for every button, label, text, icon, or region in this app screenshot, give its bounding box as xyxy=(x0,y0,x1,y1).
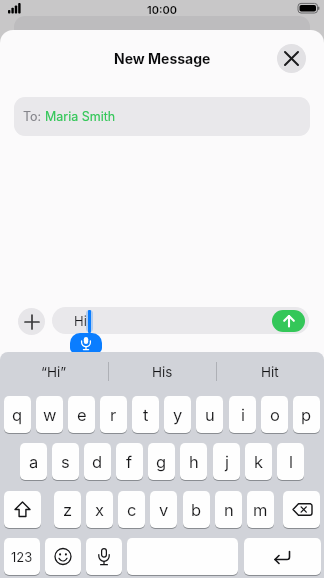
staticText: v xyxy=(159,500,169,520)
staticText: 10:00 xyxy=(147,3,177,16)
staticText: New Message xyxy=(114,50,211,67)
button[interactable]: t xyxy=(132,396,159,434)
staticText: i xyxy=(241,405,245,425)
staticText: u xyxy=(205,405,215,425)
staticText: Hit xyxy=(261,364,279,380)
button[interactable]: e xyxy=(68,396,95,434)
button[interactable]: 123 xyxy=(4,538,40,576)
staticText: h xyxy=(189,452,199,472)
button[interactable]: f xyxy=(116,443,143,481)
staticText: j xyxy=(225,452,229,472)
button[interactable]: k xyxy=(245,443,272,481)
button[interactable]: s xyxy=(52,443,79,481)
staticText: 123 xyxy=(11,549,33,565)
button[interactable]: a xyxy=(20,443,47,481)
staticText: c xyxy=(127,500,137,520)
button[interactable] xyxy=(283,491,320,529)
staticText: Maria Smith xyxy=(45,109,116,124)
button[interactable]: u xyxy=(196,396,223,434)
staticText: z xyxy=(63,500,73,520)
staticText: l xyxy=(289,452,293,472)
button[interactable]: j xyxy=(213,443,240,481)
staticText: p xyxy=(301,405,312,425)
staticText: f xyxy=(126,452,133,472)
staticText: n xyxy=(224,500,234,520)
button[interactable]: y xyxy=(164,396,191,434)
button[interactable]: q xyxy=(4,396,31,434)
button[interactable]: “Hi” xyxy=(0,352,108,391)
button[interactable]: x xyxy=(86,491,113,529)
button[interactable]: To: xyxy=(14,97,310,136)
staticText: m xyxy=(253,500,268,520)
staticText: s xyxy=(61,452,70,472)
button[interactable] xyxy=(18,308,45,335)
staticText: Hi xyxy=(74,313,87,329)
button[interactable] xyxy=(277,44,306,73)
staticText: b xyxy=(191,500,202,520)
button[interactable]: Hit xyxy=(216,352,324,391)
staticText: x xyxy=(95,500,105,520)
staticText: t xyxy=(143,405,149,425)
button[interactable]: l xyxy=(277,443,304,481)
button[interactable] xyxy=(4,491,41,529)
button[interactable]: h xyxy=(180,443,207,481)
button[interactable]: d xyxy=(84,443,111,481)
button[interactable]: i xyxy=(229,396,256,434)
staticText: “Hi” xyxy=(41,364,67,380)
staticText: a xyxy=(29,452,39,472)
staticText: d xyxy=(92,452,103,472)
staticText: q xyxy=(12,405,23,425)
button[interactable]: p xyxy=(293,396,320,434)
button[interactable] xyxy=(244,538,321,576)
button[interactable] xyxy=(52,307,309,334)
staticText: g xyxy=(156,452,167,472)
button[interactable]: v xyxy=(150,491,177,529)
button[interactable]: n xyxy=(215,491,242,529)
staticText: k xyxy=(254,452,264,472)
button[interactable] xyxy=(45,538,81,576)
staticText: e xyxy=(77,405,87,425)
button[interactable] xyxy=(127,538,238,576)
button[interactable]: m xyxy=(247,491,274,529)
staticText: r xyxy=(110,405,117,425)
button[interactable] xyxy=(272,310,305,332)
staticText: o xyxy=(270,405,280,425)
button[interactable]: r xyxy=(100,396,127,434)
staticText: y xyxy=(173,405,183,425)
button[interactable]: g xyxy=(148,443,175,481)
button[interactable]: His xyxy=(108,352,216,391)
button[interactable]: o xyxy=(261,396,288,434)
staticText: To: xyxy=(23,109,45,124)
button[interactable]: w xyxy=(36,396,63,434)
button[interactable]: z xyxy=(54,491,81,529)
button[interactable]: b xyxy=(183,491,210,529)
button[interactable]: c xyxy=(118,491,145,529)
button[interactable] xyxy=(86,538,122,576)
staticText: His xyxy=(152,364,173,380)
staticText: w xyxy=(43,405,57,425)
